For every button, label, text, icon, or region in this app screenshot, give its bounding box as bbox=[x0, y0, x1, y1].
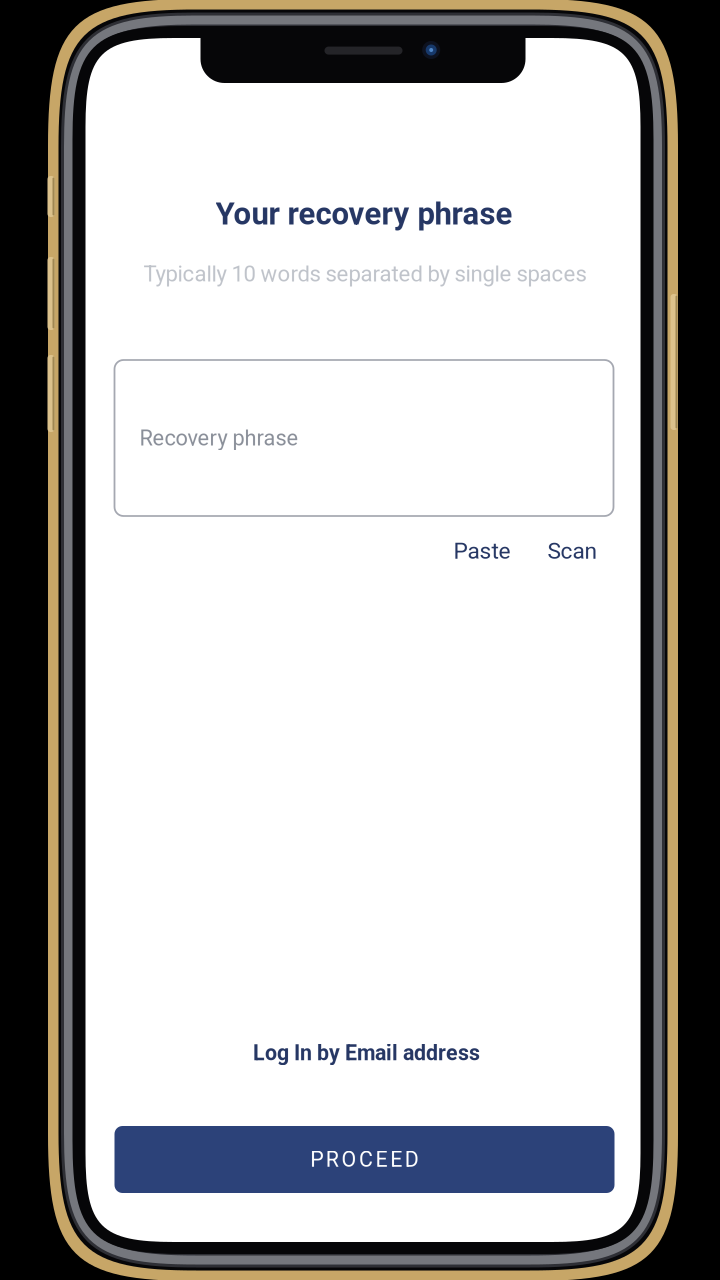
button[interactable]: PROCEED bbox=[114, 1126, 614, 1193]
staticText: Scan bbox=[547, 538, 597, 564]
button[interactable]: Paste bbox=[440, 526, 523, 576]
button[interactable]: Scan bbox=[534, 526, 610, 576]
button[interactable]: Log In by Email address bbox=[235, 1027, 498, 1078]
staticText: Your recovery phrase bbox=[215, 196, 512, 232]
staticText: Paste bbox=[453, 538, 510, 564]
staticText: PROCEED bbox=[310, 1147, 419, 1172]
staticText: Typically 10 words separated by single s… bbox=[143, 261, 586, 287]
staticText: Log In by Email address bbox=[253, 1040, 480, 1065]
staticText: Recovery phrase bbox=[139, 425, 298, 451]
